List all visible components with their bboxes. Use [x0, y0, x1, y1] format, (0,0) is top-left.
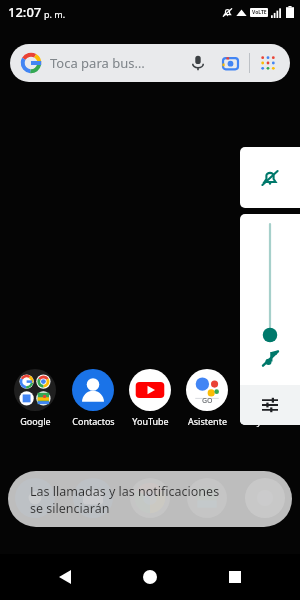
button[interactable]: Aplicaciones	[258, 53, 278, 73]
staticText: Asistente	[188, 415, 227, 427]
button[interactable]: Volumen multimedia	[240, 214, 300, 385]
staticText: Play Store	[244, 415, 286, 427]
button[interactable]: Atrás	[45, 557, 85, 597]
staticText: p. m.	[44, 8, 66, 20]
button[interactable]: Play Store	[237, 368, 293, 427]
staticText: Toca para bus…	[50, 54, 187, 72]
button[interactable]: Google Lens	[219, 52, 241, 74]
button[interactable]: Búsqueda por voz	[187, 52, 209, 74]
staticText: VoLTE	[252, 9, 267, 16]
button[interactable]: Toca para bus…	[10, 44, 290, 82]
button[interactable]: Configuración de sonido	[240, 385, 300, 425]
button[interactable]: Silencio	[240, 147, 300, 208]
staticText: 12:07	[8, 3, 42, 21]
button[interactable]: Contactos	[65, 368, 121, 427]
button[interactable]: Inicio	[130, 557, 170, 597]
button[interactable]: Google	[7, 368, 63, 427]
staticText: Google	[20, 415, 51, 427]
staticText: YouTube	[132, 415, 169, 427]
staticText: Las llamadas y las notificaciones se sil…	[30, 483, 222, 516]
staticText: Contactos	[72, 415, 115, 427]
button[interactable]: Aplicaciones recientes	[215, 557, 255, 597]
staticText: GO	[202, 396, 213, 406]
button[interactable]: YouTube	[122, 368, 178, 427]
button[interactable]: GO	[179, 368, 235, 427]
